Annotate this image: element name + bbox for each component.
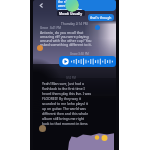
staticText: the riff you were playing around with th… — [58, 0, 82, 11]
button[interactable]: Back — [37, 1, 46, 10]
staticText: Thursday 2:14 PM — [61, 22, 88, 26]
staticText: 3:52 PM — [66, 76, 76, 80]
button[interactable]: that's though — [90, 15, 112, 20]
staticText: Mood: Usually — [59, 11, 83, 15]
button[interactable]: Mood: Usually — [59, 11, 83, 15]
staticText: Yeah! Man sure, Just had a flashback to … — [42, 81, 92, 126]
staticText: that's though — [90, 15, 112, 20]
staticText: Grace 3:41 PM — [40, 26, 62, 30]
button[interactable]: Play voice message — [59, 56, 116, 67]
button[interactable] — [95, 25, 100, 30]
button[interactable]: the riff you were playing around with th… — [56, 0, 116, 11]
staticText: Antonio, do you recall that amazing riff… — [40, 30, 94, 47]
staticText: Grace 3:50 PM — [70, 52, 89, 56]
